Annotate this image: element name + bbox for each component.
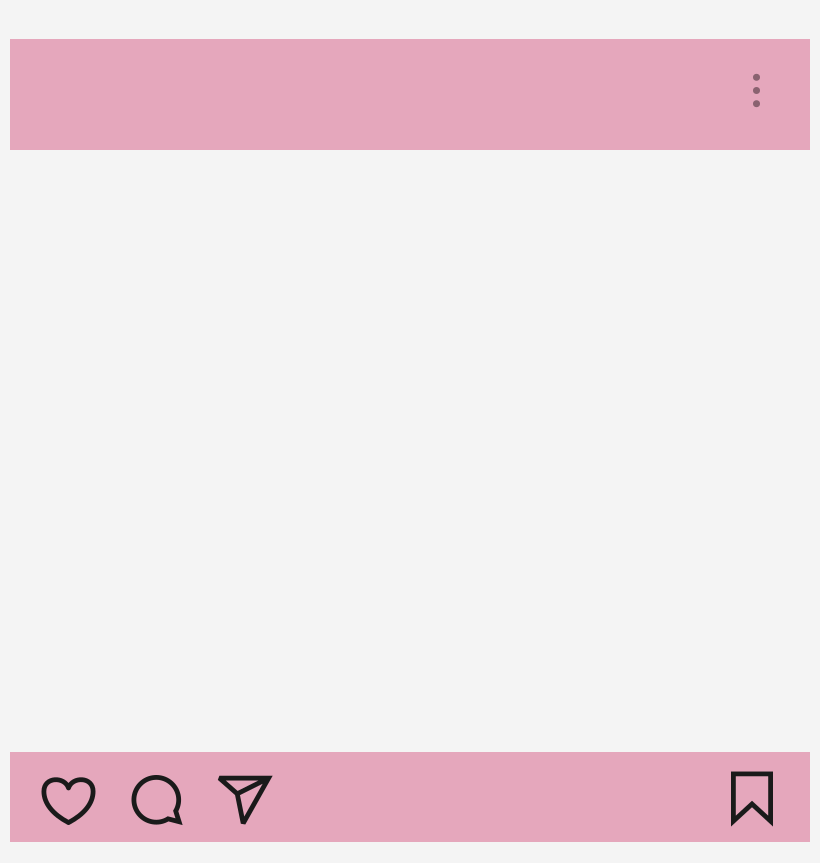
button[interactable]: Like: [28, 759, 108, 843]
button[interactable]: Save: [714, 755, 790, 839]
button[interactable]: More options: [728, 50, 784, 130]
button[interactable]: Comment: [116, 758, 196, 842]
button[interactable]: Share: [204, 757, 284, 841]
